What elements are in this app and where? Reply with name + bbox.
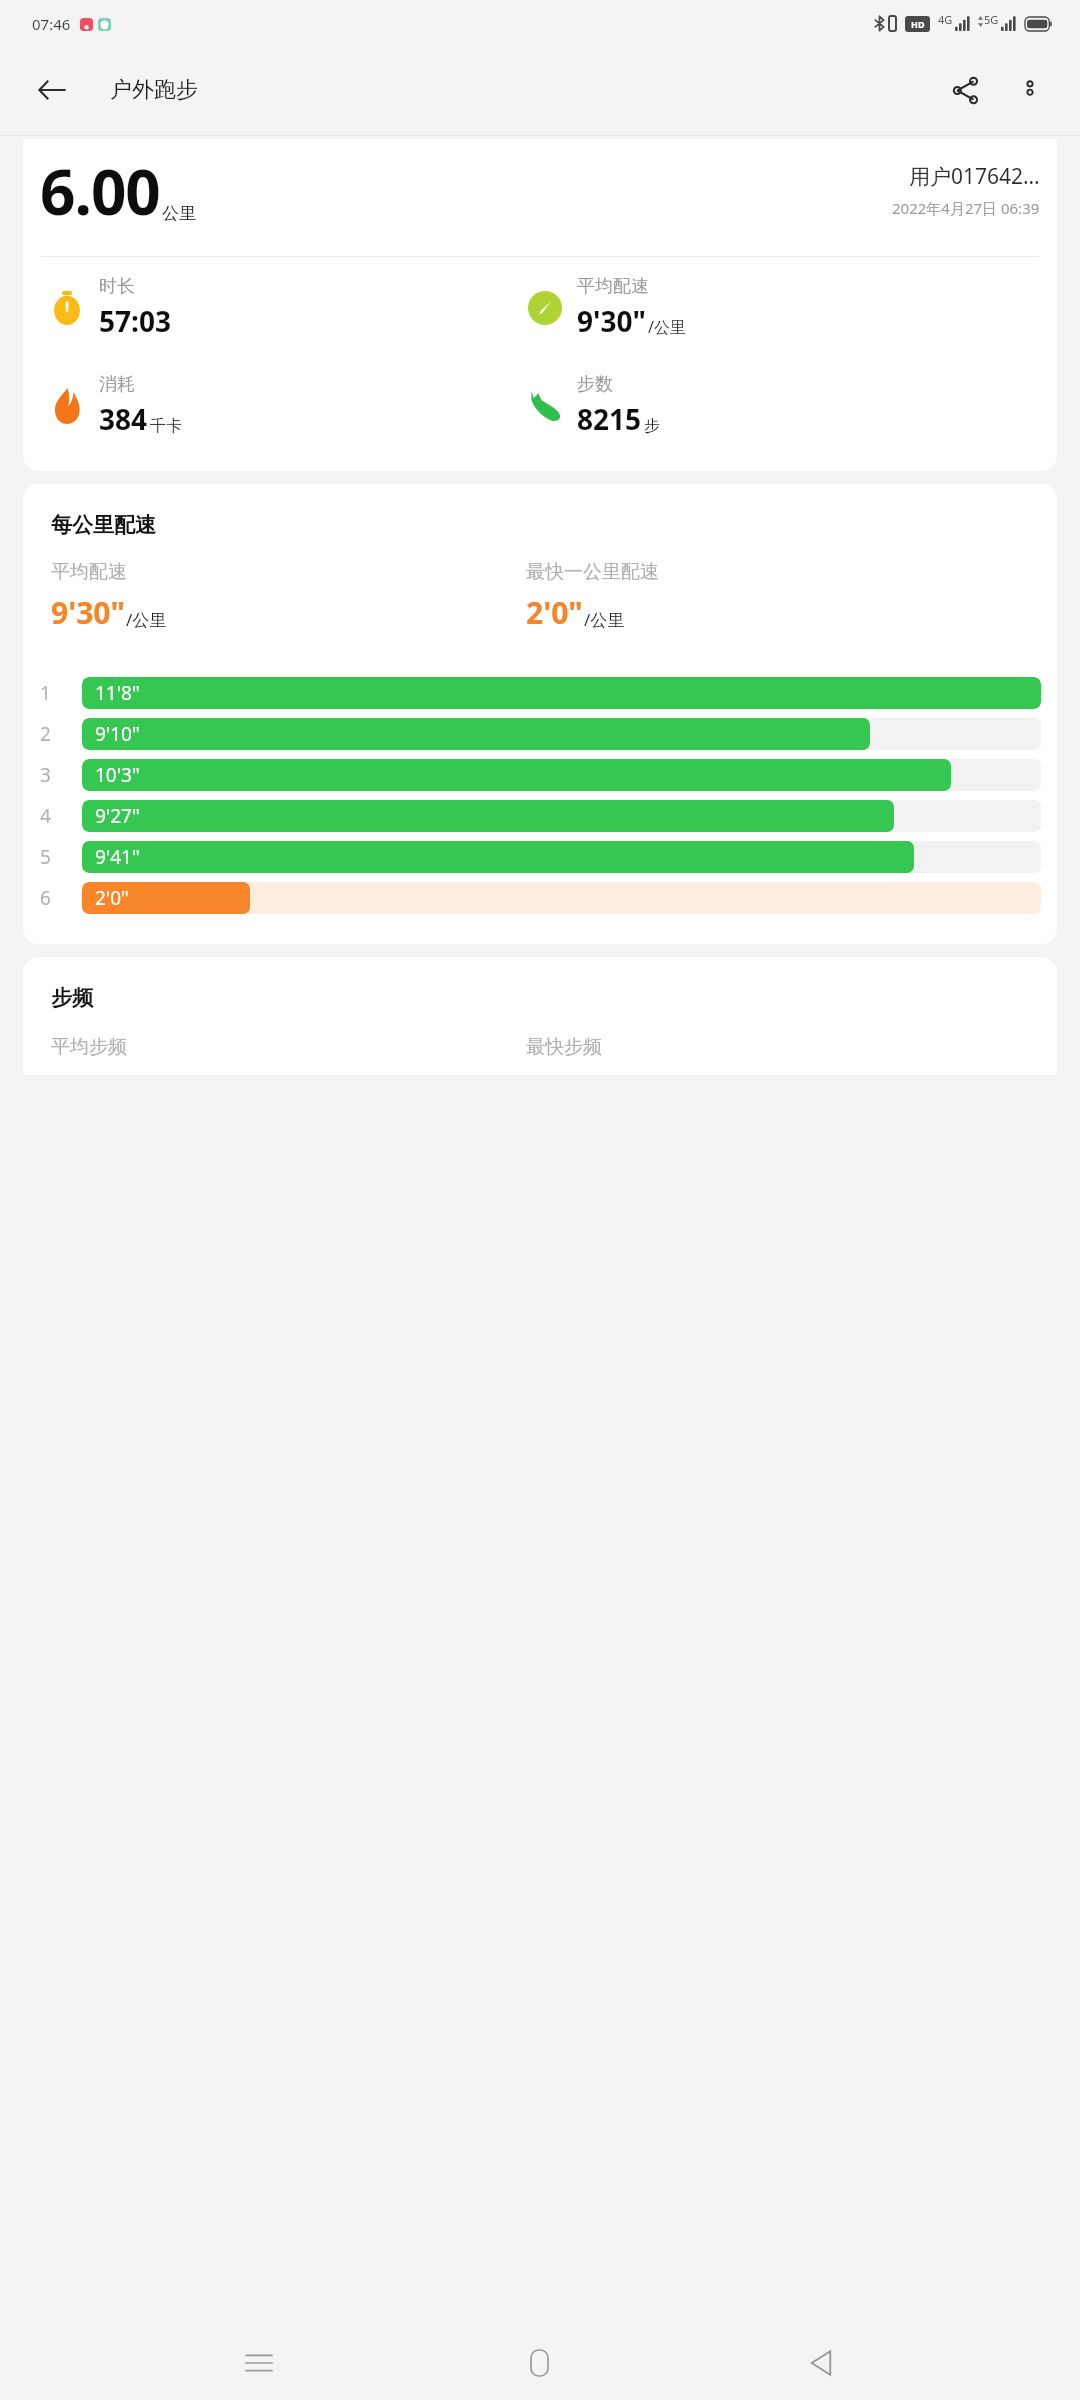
button[interactable]: Recent apps [119,2328,399,2398]
staticText: 用户017642… [909,162,1040,191]
staticText: 9'10" [95,721,140,747]
staticText: 2 [40,721,70,747]
staticText: 步频 [51,985,93,1011]
staticText: 11'8" [95,680,140,706]
button[interactable]: 6.00 [23,139,1057,471]
staticText: 10'3" [95,762,140,788]
staticText: 2'0" [526,592,583,633]
staticText: 4 [40,803,70,829]
staticText: 步数 [577,373,613,396]
staticText: 384 [99,400,148,438]
staticText: 时长 [99,275,135,298]
button[interactable]: Share [938,62,994,118]
staticText: /公里 [584,608,625,631]
staticText: 4G [938,12,953,27]
staticText: 千卡 [150,416,182,436]
staticText: 平均配速 [577,275,649,298]
staticText: 最快一公里配速 [526,560,659,584]
button[interactable]: Home [399,2328,680,2398]
button[interactable]: More options [1002,62,1058,118]
staticText: 3 [40,762,70,788]
button[interactable]: 每公里配速 [23,484,1057,944]
button[interactable]: Back [680,2328,961,2398]
button[interactable]: 步频 [23,957,1057,1075]
staticText: 9'30" [51,592,125,633]
staticText: 最快步频 [526,1035,1057,1059]
staticText: 2022年4月27日 06:39 [892,198,1040,218]
staticText: 57:03 [99,302,171,340]
staticText: 步 [644,416,660,436]
staticText: 消耗 [99,373,135,396]
staticText: /公里 [126,608,167,631]
staticText: 2'0" [95,885,129,911]
staticText: 公里 [162,203,196,224]
staticText: HD [911,18,925,30]
staticText: 1 [40,680,70,706]
staticText: 6.00 [40,149,160,233]
staticText: 平均步频 [51,1035,526,1059]
staticText: 5G [984,12,999,27]
staticText: 6 [40,885,70,911]
staticText: 8215 [577,400,642,438]
staticText: 5 [40,844,70,870]
staticText: /公里 [648,316,686,338]
staticText: 户外跑步 [110,76,198,104]
staticText: 9'30" [577,302,646,340]
staticText: 07:46 [32,14,71,34]
staticText: 9'41" [95,844,140,870]
staticText: 9'27" [95,803,140,829]
staticText: 平均配速 [51,560,127,584]
staticText: 每公里配速 [51,512,156,538]
button[interactable]: Back [26,64,78,116]
